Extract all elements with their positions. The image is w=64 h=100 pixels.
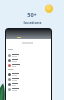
staticText: locations bbox=[23, 20, 42, 25]
staticText: 50+ bbox=[27, 11, 37, 19]
button[interactable] bbox=[6, 82, 51, 87]
button[interactable] bbox=[6, 53, 51, 58]
button[interactable] bbox=[6, 63, 51, 68]
button[interactable] bbox=[6, 77, 51, 82]
button[interactable] bbox=[6, 87, 51, 92]
button[interactable] bbox=[6, 58, 51, 63]
button[interactable] bbox=[6, 72, 51, 77]
